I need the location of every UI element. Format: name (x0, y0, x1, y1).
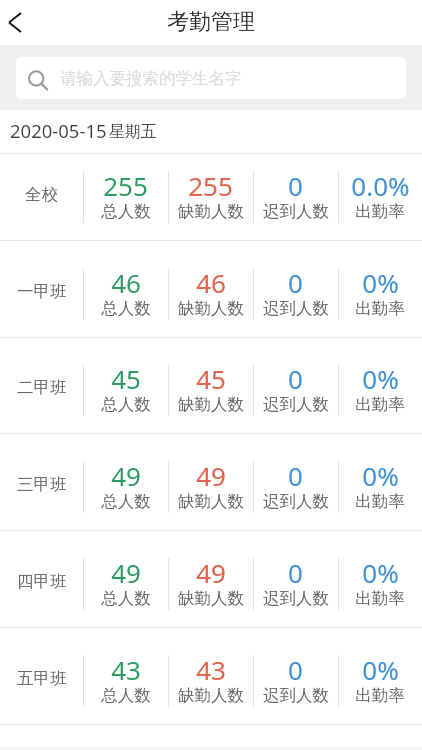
staticText: 全校 (25, 184, 58, 205)
staticText: 0% (362, 555, 399, 590)
staticText: 46 (196, 265, 226, 300)
staticText: 三甲班 (17, 474, 67, 495)
staticText: 四甲班 (17, 571, 67, 592)
staticText: 出勤率 (355, 491, 405, 512)
staticText: 255 (188, 168, 233, 203)
staticText: 0% (362, 652, 399, 687)
staticText: 49 (196, 458, 226, 493)
staticText: 0 (288, 168, 303, 203)
staticText: 45 (111, 361, 141, 396)
button[interactable]: Back (0, 0, 36, 45)
staticText: 2020-05-15 (10, 118, 107, 143)
staticText: 一甲班 (17, 281, 67, 302)
staticText: 出勤率 (355, 394, 405, 415)
staticText: 出勤率 (355, 298, 405, 319)
staticText: 缺勤人数 (178, 201, 244, 222)
staticText: 43 (111, 652, 141, 687)
staticText: 0% (362, 361, 399, 396)
staticText: 0 (288, 652, 303, 687)
staticText: 总人数 (101, 394, 151, 415)
staticText: 星期五 (109, 122, 157, 142)
button[interactable]: 全校 (0, 154, 422, 240)
staticText: 五甲班 (17, 668, 67, 689)
staticText: 49 (196, 555, 226, 590)
staticText: 缺勤人数 (178, 298, 244, 319)
staticText: 缺勤人数 (178, 394, 244, 415)
staticText: 迟到人数 (263, 298, 329, 319)
staticText: 迟到人数 (263, 394, 329, 415)
staticText: 49 (111, 555, 141, 590)
staticText: 出勤率 (355, 201, 405, 222)
staticText: 请输入要搜索的学生名字 (60, 68, 242, 89)
staticText: 缺勤人数 (178, 491, 244, 512)
button[interactable]: 三甲班 (0, 434, 422, 530)
staticText: 迟到人数 (263, 491, 329, 512)
staticText: 0 (288, 458, 303, 493)
staticText: 缺勤人数 (178, 588, 244, 609)
staticText: 0 (288, 361, 303, 396)
staticText: 45 (196, 361, 226, 396)
staticText: 46 (111, 265, 141, 300)
staticText: 49 (111, 458, 141, 493)
staticText: 总人数 (101, 588, 151, 609)
staticText: 出勤率 (355, 685, 405, 706)
button[interactable]: 四甲班 (0, 531, 422, 627)
staticText: 总人数 (101, 298, 151, 319)
staticText: 总人数 (101, 685, 151, 706)
staticText: 总人数 (101, 201, 151, 222)
staticText: 缺勤人数 (178, 685, 244, 706)
staticText: 0 (288, 265, 303, 300)
staticText: 43 (196, 652, 226, 687)
button[interactable]: 五甲班 (0, 628, 422, 724)
staticText: 二甲班 (17, 377, 67, 398)
staticText: 0% (362, 265, 399, 300)
staticText: 0% (362, 458, 399, 493)
staticText: 出勤率 (355, 588, 405, 609)
button[interactable]: 一甲班 (0, 241, 422, 337)
staticText: 0.0% (351, 168, 410, 203)
button[interactable]: 二甲班 (0, 338, 422, 433)
staticText: 255 (103, 168, 148, 203)
staticText: 迟到人数 (263, 685, 329, 706)
staticText: 迟到人数 (263, 201, 329, 222)
button[interactable]: 请输入要搜索的学生名字 (16, 57, 406, 99)
staticText: 迟到人数 (263, 588, 329, 609)
staticText: 0 (288, 555, 303, 590)
staticText: 考勤管理 (167, 8, 255, 36)
staticText: 总人数 (101, 491, 151, 512)
